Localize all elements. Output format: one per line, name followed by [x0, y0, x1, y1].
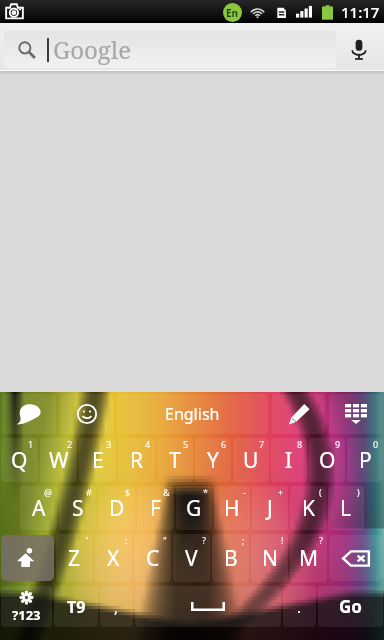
staticText: ?: [202, 534, 206, 546]
button[interactable]: T9: [54, 586, 98, 627]
staticText: +: [278, 486, 284, 498]
button[interactable]: Emoji: [60, 394, 113, 434]
button[interactable]: .: [283, 586, 316, 627]
button[interactable]: Z: [56, 534, 93, 582]
staticText: H: [224, 494, 240, 523]
staticText: S: [72, 494, 84, 523]
button[interactable]: Space: [135, 586, 281, 627]
staticText: (: [319, 486, 322, 498]
staticText: 0: [373, 438, 379, 450]
staticText: Google: [53, 33, 132, 66]
staticText: T9: [67, 596, 86, 618]
button[interactable]: N: [251, 534, 288, 582]
button[interactable]: G: [176, 486, 212, 530]
button[interactable]: Google: [4, 31, 336, 68]
button[interactable]: M: [290, 534, 327, 582]
staticText: ): [357, 486, 360, 498]
staticText: !: [281, 534, 284, 546]
button[interactable]: L: [328, 486, 364, 530]
staticText: E: [92, 446, 104, 475]
staticText: 1: [28, 438, 34, 450]
staticText: English: [165, 403, 220, 425]
button[interactable]: Symbols and settings: [1, 586, 52, 627]
button[interactable]: Shift: [1, 535, 54, 581]
staticText: L: [340, 494, 352, 523]
staticText: 4: [145, 438, 151, 450]
button[interactable]: Q: [1, 438, 38, 482]
staticText: ?: [319, 534, 323, 546]
button[interactable]: B: [212, 534, 249, 582]
button[interactable]: F: [137, 486, 174, 530]
staticText: Go: [339, 595, 362, 618]
staticText: 5: [183, 438, 189, 450]
button[interactable]: GO Keyboard menu: [2, 394, 56, 434]
staticText: A: [32, 494, 46, 523]
staticText: U: [243, 446, 259, 475]
button[interactable]: C: [134, 534, 171, 582]
staticText: K: [302, 494, 315, 523]
button[interactable]: O: [309, 438, 345, 482]
staticText: En: [226, 6, 239, 20]
staticText: V: [185, 544, 198, 573]
staticText: #: [86, 486, 92, 498]
staticText: D: [109, 494, 125, 523]
button[interactable]: T: [157, 438, 193, 482]
button[interactable]: Voice search: [336, 31, 382, 68]
staticText: 6: [221, 438, 227, 450]
button[interactable]: X: [95, 534, 132, 582]
staticText: @: [44, 486, 53, 498]
staticText: Q: [11, 446, 28, 475]
staticText: 2: [67, 438, 73, 450]
button[interactable]: H: [214, 486, 250, 530]
staticText: .: [297, 597, 302, 617]
staticText: Y: [207, 446, 219, 475]
staticText: W: [49, 446, 69, 475]
button[interactable]: K: [290, 486, 326, 530]
staticText: C: [146, 544, 160, 573]
staticText: 9: [335, 438, 341, 450]
staticText: -: [243, 486, 246, 498]
button[interactable]: W: [40, 438, 77, 482]
button[interactable]: Y: [195, 438, 231, 482]
staticText: R: [130, 446, 144, 475]
staticText: 8: [297, 438, 303, 450]
button[interactable]: R: [118, 438, 155, 482]
staticText: ;: [242, 534, 245, 546]
button[interactable]: ,: [100, 586, 133, 627]
staticText: X: [107, 544, 120, 573]
staticText: ": [163, 534, 167, 546]
staticText: P: [359, 446, 372, 475]
button[interactable]: A: [20, 486, 57, 530]
button[interactable]: E: [79, 438, 116, 482]
staticText: 3: [106, 438, 112, 450]
button[interactable]: Backspace: [329, 535, 383, 581]
button[interactable]: P: [347, 438, 383, 482]
staticText: I: [285, 446, 293, 475]
staticText: 11:17: [341, 2, 380, 22]
staticText: F: [150, 494, 161, 523]
button[interactable]: English: [117, 394, 268, 434]
staticText: :: [125, 534, 128, 546]
button[interactable]: S: [59, 486, 96, 530]
staticText: ': [86, 534, 89, 546]
staticText: N: [262, 544, 278, 573]
button[interactable]: Handwriting: [272, 394, 325, 434]
staticText: ?123: [12, 606, 41, 624]
staticText: O: [319, 446, 336, 475]
button[interactable]: J: [252, 486, 288, 530]
button[interactable]: Go: [318, 586, 383, 627]
staticText: $: [125, 486, 131, 498]
staticText: T: [169, 446, 181, 475]
staticText: Z: [68, 544, 81, 573]
button[interactable]: U: [233, 438, 269, 482]
staticText: G: [186, 494, 202, 523]
staticText: 7: [259, 438, 265, 450]
button[interactable]: Keyboard layouts: [329, 394, 382, 434]
button[interactable]: D: [98, 486, 135, 530]
staticText: ,: [114, 597, 119, 617]
staticText: B: [224, 544, 238, 573]
button[interactable]: V: [173, 534, 210, 582]
staticText: &: [163, 486, 170, 498]
button[interactable]: I: [271, 438, 307, 482]
staticText: M: [299, 544, 319, 573]
